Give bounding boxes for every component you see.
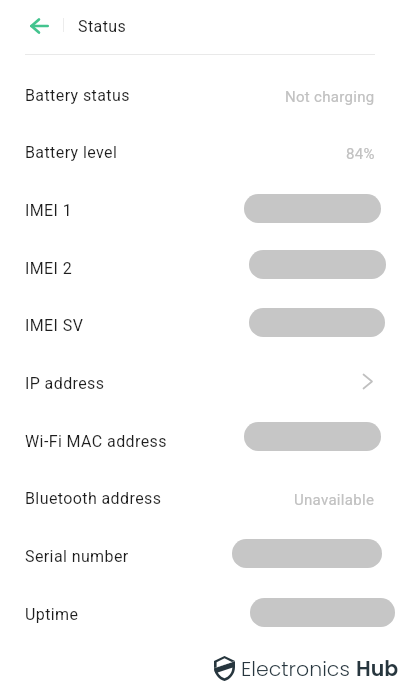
staticText: Hub <box>356 654 399 683</box>
button[interactable] <box>0 586 400 644</box>
button[interactable] <box>0 67 400 125</box>
button[interactable] <box>0 240 400 298</box>
button[interactable]: Back <box>24 12 54 40</box>
staticText: Bluetooth address <box>25 489 162 508</box>
button[interactable] <box>0 183 400 241</box>
staticText: IMEI 2 <box>25 259 73 278</box>
staticText: Uptime <box>25 605 79 624</box>
button[interactable] <box>0 125 400 183</box>
button[interactable] <box>0 413 400 471</box>
button[interactable] <box>0 471 400 529</box>
staticText: IP address <box>25 374 105 393</box>
staticText: Battery status <box>25 86 130 105</box>
staticText: Battery level <box>25 143 118 162</box>
staticText: Serial number <box>25 547 129 566</box>
staticText: Not charging <box>285 88 375 106</box>
staticText: Unavailable <box>294 491 375 509</box>
staticText: IMEI 1 <box>25 201 73 220</box>
button[interactable] <box>0 356 400 414</box>
staticText: Status <box>78 17 127 36</box>
button[interactable] <box>0 529 400 587</box>
staticText: Wi-Fi MAC address <box>25 432 167 451</box>
staticText: Electronics <box>241 654 356 683</box>
staticText: IMEI SV <box>25 316 84 335</box>
button[interactable] <box>0 298 400 356</box>
staticText: 84% <box>346 145 375 163</box>
